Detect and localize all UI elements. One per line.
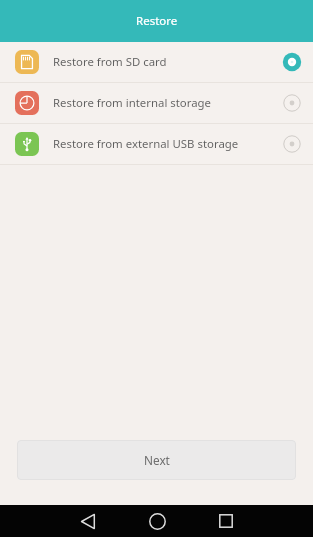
button[interactable]: Home [140, 505, 174, 537]
button[interactable]: Restore from external USB storage [0, 124, 313, 164]
button[interactable]: Back [71, 505, 105, 537]
staticText: Restore from external USB storage [53, 136, 239, 152]
button[interactable]: Recents [209, 505, 243, 537]
staticText: Restore [136, 13, 178, 29]
staticText: Next [144, 452, 170, 468]
staticText: Restore from internal storage [53, 95, 212, 111]
button[interactable]: Next [17, 440, 296, 480]
staticText: Restore from SD card [53, 54, 167, 70]
button[interactable]: Restore from SD card [0, 42, 313, 82]
button[interactable]: Restore from internal storage [0, 83, 313, 123]
